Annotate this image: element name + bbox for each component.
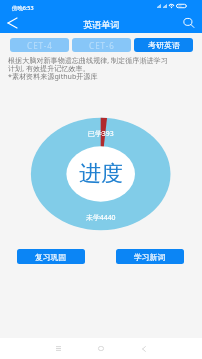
button[interactable]: Search — [180, 13, 200, 33]
button[interactable]: Home — [90, 338, 111, 359]
staticText: 学习新词 — [134, 252, 166, 262]
staticText: 傍晚6:53 — [12, 4, 34, 11]
button[interactable]: 复习巩固 — [17, 249, 85, 264]
staticText: 根据大脑对新事物遗忘曲线规律, 制定循序渐进学习 计划, 有效提升记忆效率。 *… — [8, 55, 168, 81]
button[interactable]: Recents — [48, 338, 69, 359]
staticText: 考研英语 — [148, 40, 180, 50]
staticText: CET-4 — [27, 40, 53, 51]
button[interactable]: 学习新词 — [116, 249, 184, 264]
staticText: 未学4440 — [86, 213, 116, 222]
staticText: CET-6 — [89, 40, 115, 51]
button[interactable]: Back — [2, 13, 23, 33]
button[interactable]: 考研英语 — [134, 38, 193, 52]
staticText: 英语单词 — [83, 19, 120, 31]
button[interactable]: Back — [133, 338, 154, 359]
staticText: 已学393 — [88, 129, 114, 138]
staticText: 进度 — [79, 160, 123, 188]
button[interactable]: CET-4 — [10, 38, 69, 52]
staticText: 复习巩固 — [35, 252, 67, 262]
button[interactable]: CET-6 — [72, 38, 131, 52]
